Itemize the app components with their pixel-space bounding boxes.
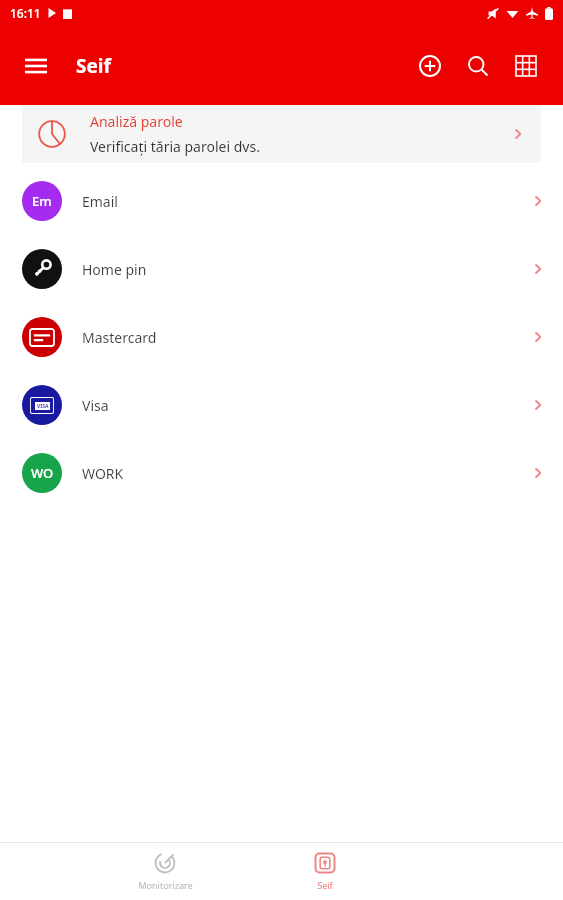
staticText: Visa <box>82 396 109 415</box>
button[interactable]: WO <box>0 439 563 507</box>
staticText: Home pin <box>82 260 147 279</box>
staticText: Email <box>82 192 118 211</box>
button[interactable]: Em <box>0 167 563 235</box>
button[interactable]: Home pin <box>0 235 563 303</box>
staticText: WO <box>31 464 54 482</box>
staticText: Monitorizare <box>138 879 193 891</box>
button[interactable]: Monitorizare <box>123 843 207 900</box>
button[interactable]: VISA <box>0 371 563 439</box>
staticText: Seif <box>76 53 111 79</box>
button[interactable]: Menu <box>14 44 58 88</box>
staticText: VISA <box>37 403 49 410</box>
staticText: Mastercard <box>82 328 157 347</box>
staticText: Analiză parole <box>90 112 183 131</box>
staticText: Seif <box>317 879 333 891</box>
button[interactable]: Mastercard <box>0 303 563 371</box>
button[interactable]: Analiză parole <box>22 105 541 163</box>
button[interactable]: Search <box>455 43 501 89</box>
button[interactable]: Add <box>407 43 453 89</box>
staticText: 16:11 <box>10 5 41 21</box>
staticText: WORK <box>82 464 124 483</box>
staticText: Verificați tăria parolei dvs. <box>90 137 260 156</box>
button[interactable]: Seif <box>283 843 367 900</box>
staticText: Em <box>32 192 52 210</box>
button[interactable]: Grid view <box>503 43 549 89</box>
